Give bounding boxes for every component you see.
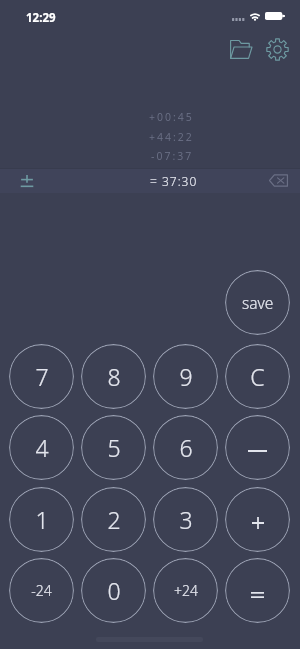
staticText: C xyxy=(250,361,265,392)
staticText: 3 xyxy=(179,504,193,535)
button[interactable]: 6 xyxy=(153,415,218,480)
staticText: = 37:30 xyxy=(150,173,198,189)
button[interactable]: C xyxy=(225,344,290,409)
staticText: 12:29 xyxy=(26,10,56,26)
button[interactable]: 3 xyxy=(153,487,218,552)
staticText: 6 xyxy=(179,432,193,463)
button[interactable]: 2 xyxy=(81,487,146,552)
staticText: 4 xyxy=(35,432,49,463)
button[interactable]: 9 xyxy=(153,344,218,409)
staticText: 0 xyxy=(107,575,121,606)
staticText: -07:37 xyxy=(151,149,194,163)
button[interactable] xyxy=(225,558,290,623)
staticText: +44:22 xyxy=(149,130,194,144)
button[interactable]: 8 xyxy=(81,344,146,409)
staticText: 9 xyxy=(179,361,193,392)
button[interactable]: -24 xyxy=(9,558,74,623)
staticText: save xyxy=(242,292,274,313)
button[interactable]: Open saved xyxy=(228,37,252,61)
button[interactable]: 0 xyxy=(81,558,146,623)
button[interactable]: save xyxy=(225,270,290,335)
button[interactable] xyxy=(225,415,290,480)
button[interactable]: 7 xyxy=(9,344,74,409)
staticText: +00:45 xyxy=(149,110,194,124)
staticText: 5 xyxy=(107,432,121,463)
staticText: -24 xyxy=(31,581,52,600)
staticText: 7 xyxy=(35,361,49,392)
button[interactable]: Toggle sign xyxy=(0,168,54,193)
staticText: 8 xyxy=(107,361,121,392)
button[interactable]: 4 xyxy=(9,415,74,480)
staticText: 2 xyxy=(107,504,121,535)
button[interactable] xyxy=(225,487,290,552)
button[interactable]: 5 xyxy=(81,415,146,480)
button[interactable]: 1 xyxy=(9,487,74,552)
staticText: 1 xyxy=(35,504,49,535)
button[interactable]: +24 xyxy=(153,558,218,623)
button[interactable]: Backspace xyxy=(256,168,300,193)
staticText: +24 xyxy=(174,581,198,600)
button[interactable]: Settings xyxy=(265,37,289,61)
